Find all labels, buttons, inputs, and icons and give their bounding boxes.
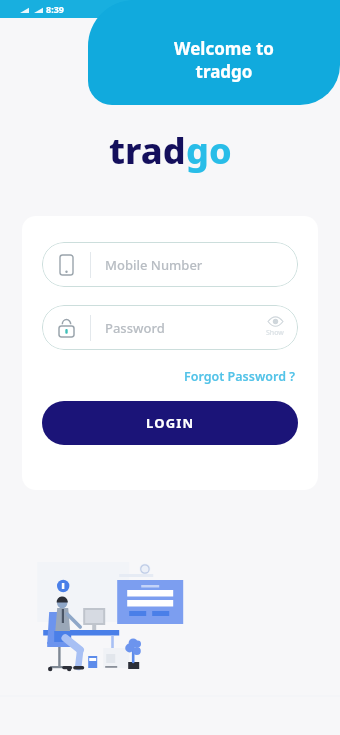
button[interactable]: Mobile Number xyxy=(42,242,298,287)
button[interactable]: Password xyxy=(42,305,298,350)
staticText: LOGIN xyxy=(146,414,195,432)
button[interactable]: Forgot Password ? xyxy=(182,366,298,387)
staticText: 8:39 xyxy=(46,3,64,15)
button[interactable]: LOGIN xyxy=(42,401,298,445)
staticText: Show xyxy=(266,328,284,338)
button[interactable]: Show password xyxy=(266,317,284,338)
staticText: go xyxy=(186,126,232,175)
staticText: Mobile Number xyxy=(105,256,298,274)
staticText: Password xyxy=(105,319,266,337)
staticText: Welcome to tradgo xyxy=(174,37,274,83)
staticText: Forgot Password ? xyxy=(184,368,296,385)
staticText: trad xyxy=(109,126,186,175)
